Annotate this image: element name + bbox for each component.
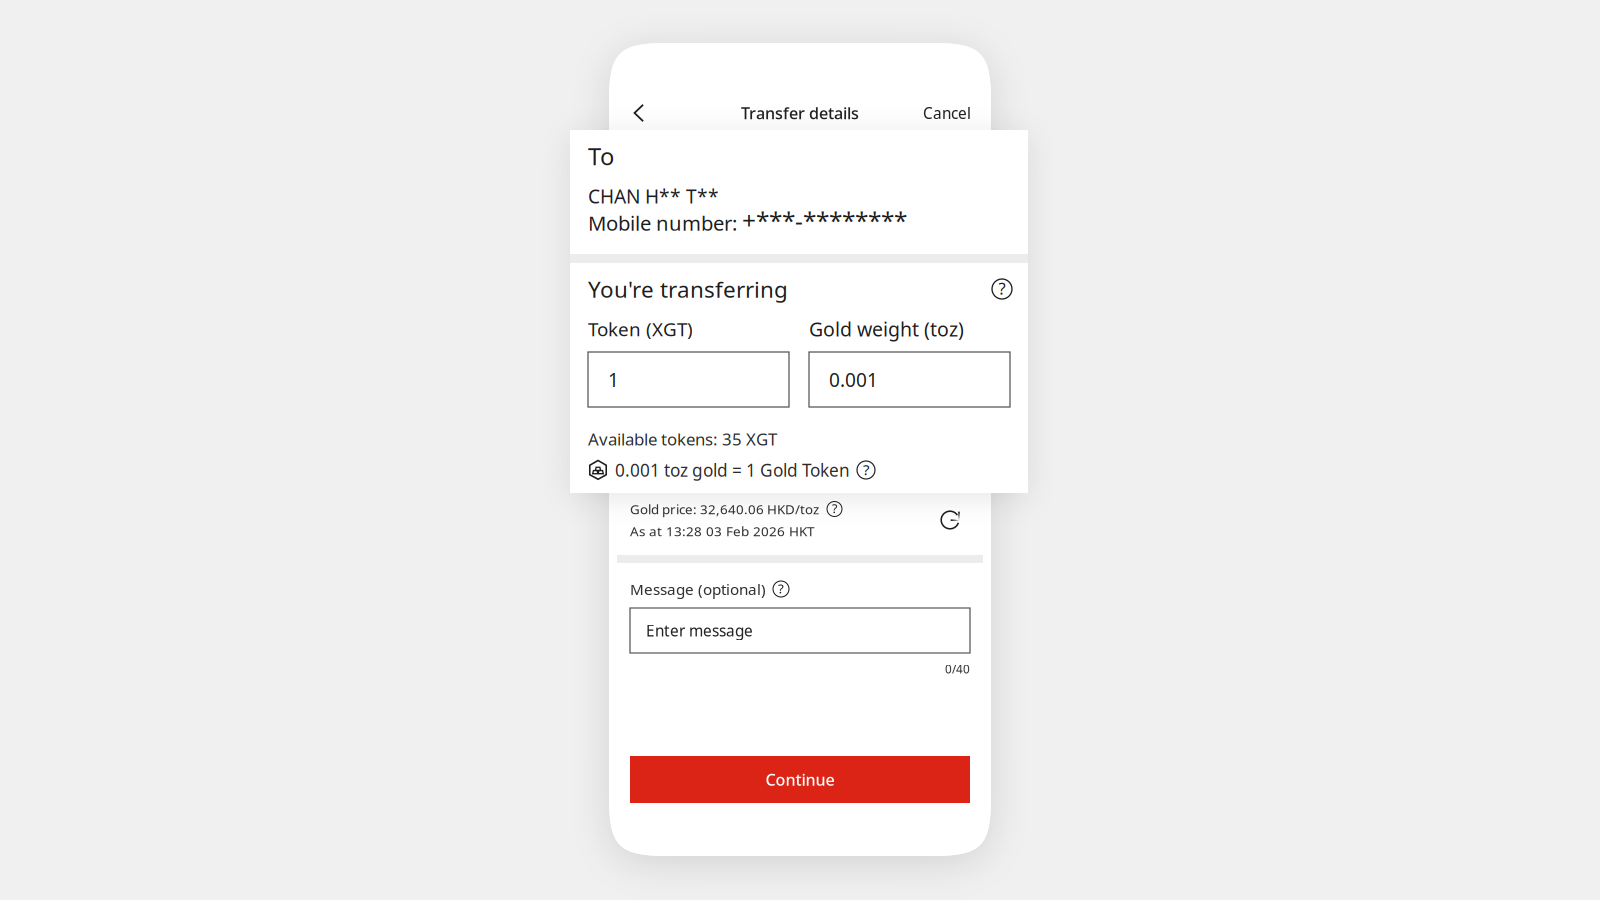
staticText: Gold price: 32,640.06 HKD/toz (630, 500, 819, 518)
button[interactable]: About transferring (992, 279, 1012, 299)
staticText: Gold weight (toz) (809, 316, 964, 342)
staticText: 0.001 (829, 366, 878, 392)
button[interactable]: About gold token conversion (857, 461, 875, 479)
staticText: Mobile number: (588, 209, 742, 237)
button[interactable]: 0.001 (809, 352, 1010, 407)
staticText: You're transferring (588, 274, 788, 304)
staticText: ? (998, 277, 1005, 299)
staticText: Transfer details (741, 102, 859, 124)
staticText: Token (XGT) (588, 316, 693, 342)
staticText: 0.001 toz gold = 1 Gold Token (615, 458, 850, 482)
staticText: 1 (608, 366, 619, 392)
button[interactable]: Enter message (630, 608, 970, 653)
button[interactable]: Back (617, 91, 661, 135)
staticText: Available tokens: 35 XGT (588, 428, 777, 450)
staticText: To (588, 140, 614, 172)
staticText: Cancel (923, 103, 971, 123)
staticText: +***-******** (742, 203, 907, 237)
staticText: ? (778, 579, 784, 597)
staticText: ? (863, 459, 869, 479)
staticText: CHAN H** T** (588, 183, 719, 209)
staticText: Enter message (646, 620, 753, 641)
button[interactable]: 1 (588, 352, 789, 407)
button[interactable]: Continue (630, 756, 970, 803)
staticText: ? (832, 500, 837, 517)
staticText: As at 13:28 03 Feb 2026 HKT (630, 522, 814, 540)
staticText: Message (optional) (630, 579, 766, 599)
button[interactable]: Refresh gold price (939, 509, 961, 531)
staticText: Continue (765, 768, 834, 790)
staticText: 0/40 (945, 661, 970, 677)
button[interactable]: Cancel (870, 100, 971, 126)
